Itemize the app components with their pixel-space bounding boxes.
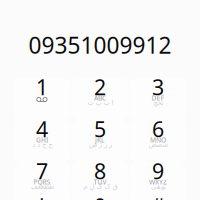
staticText: 8 <box>94 157 106 185</box>
staticText: ح خ د ذ <box>32 141 52 148</box>
staticText: ا ب پ ت <box>87 99 113 106</box>
button[interactable]: 7 <box>13 162 70 200</box>
button[interactable]: 2 <box>71 78 128 120</box>
button[interactable]: 1 <box>13 78 70 120</box>
staticText: ثجچ <box>153 99 163 106</box>
staticText: ر ز ژ س <box>88 141 111 148</box>
staticText: 0 <box>94 192 106 200</box>
staticText: 4 <box>36 115 48 143</box>
staticText: 1 <box>36 73 48 101</box>
button[interactable]: 3 <box>129 78 186 120</box>
staticText: TUV <box>93 178 106 186</box>
button[interactable]: 4 <box>13 120 70 162</box>
button[interactable]: 6 <box>129 120 186 162</box>
button[interactable]: 9 <box>129 162 186 200</box>
staticText: ق ک گ ل م <box>83 183 117 190</box>
staticText: WXYZ <box>149 178 167 186</box>
button[interactable]: 0 <box>71 197 128 200</box>
staticText: PQRS <box>33 178 50 186</box>
staticText: 9 <box>152 157 164 185</box>
staticText: # <box>151 192 165 200</box>
staticText: 09351009912 <box>28 30 171 60</box>
staticText: 6 <box>152 115 164 143</box>
button[interactable]: # <box>129 197 186 200</box>
button[interactable]: * <box>13 197 70 200</box>
staticText: MNO <box>150 136 166 144</box>
staticText: 7 <box>36 157 48 185</box>
staticText: GHI <box>36 136 48 144</box>
staticText: ABC <box>94 94 106 102</box>
staticText: 5 <box>94 115 106 143</box>
staticText: طظعغف <box>30 183 53 190</box>
staticText: JKL <box>95 136 105 144</box>
staticText: شصض <box>148 141 168 148</box>
staticText: 3 <box>152 73 164 101</box>
button[interactable]: 5 <box>71 120 128 162</box>
staticText: DEF <box>151 94 164 102</box>
staticText: نوهی <box>150 183 165 190</box>
staticText: * <box>36 192 48 200</box>
staticText: 2 <box>94 73 106 101</box>
button[interactable]: 8 <box>71 162 128 200</box>
